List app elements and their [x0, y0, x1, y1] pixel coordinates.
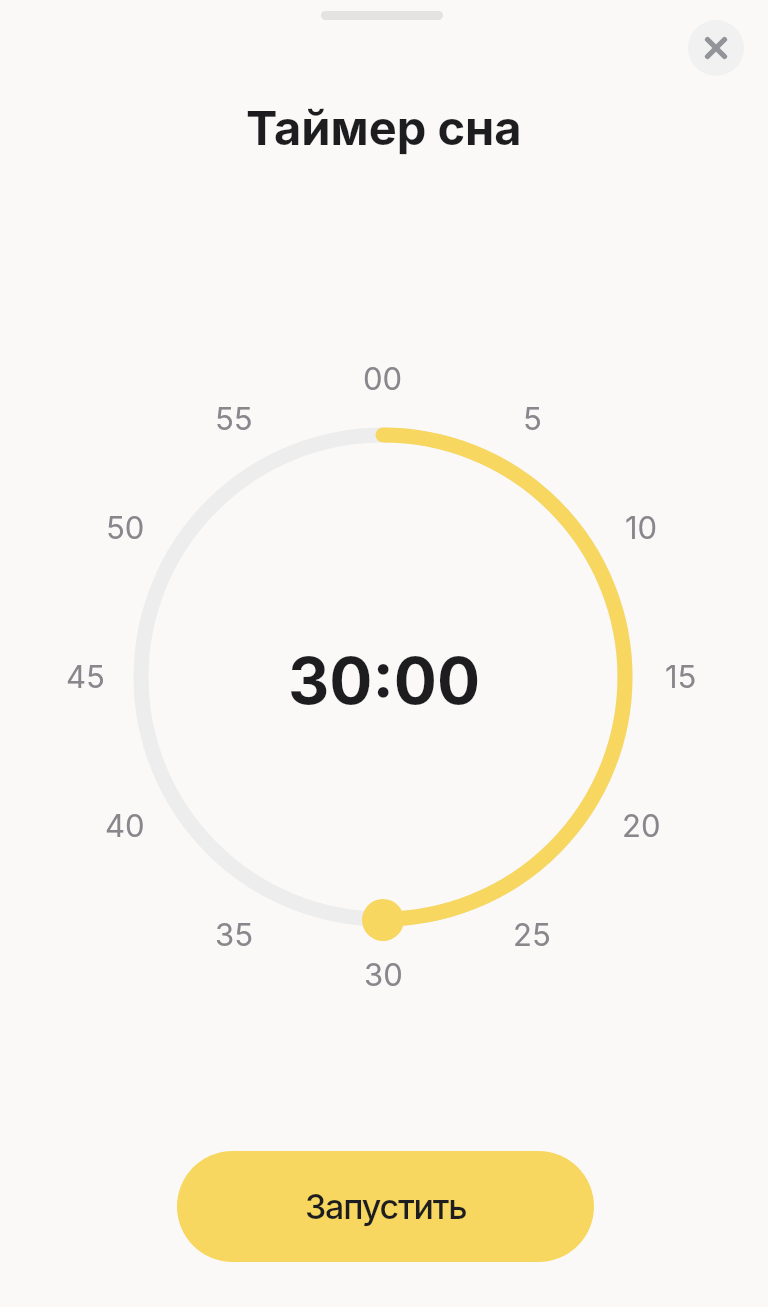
staticText: Таймер сна [246, 99, 522, 156]
staticText: 25 [513, 916, 551, 954]
button[interactable]: Запустить [177, 1151, 594, 1262]
staticText: 55 [215, 400, 253, 438]
staticText: 30 [364, 956, 403, 994]
staticText: Запустить [305, 1186, 467, 1227]
staticText: 30:00 [288, 642, 481, 719]
staticText: 40 [105, 807, 145, 845]
staticText: 10 [625, 509, 658, 547]
staticText: 5 [523, 400, 542, 438]
staticText: 00 [363, 360, 403, 398]
staticText: 50 [106, 509, 145, 547]
button[interactable] [688, 20, 744, 76]
staticText: 20 [622, 807, 661, 845]
staticText: 15 [665, 658, 697, 696]
staticText: 35 [215, 916, 253, 954]
staticText: 45 [66, 658, 105, 696]
